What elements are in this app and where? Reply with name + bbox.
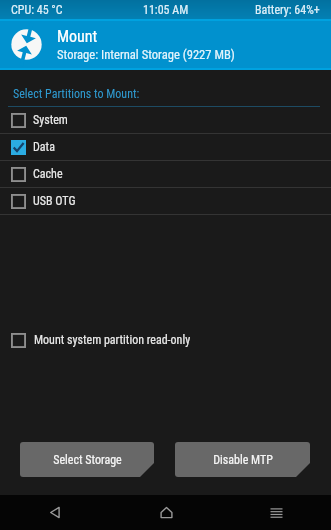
button[interactable]: Data — [0, 134, 331, 161]
button[interactable]: System — [0, 107, 331, 134]
staticText: Cache — [33, 167, 63, 181]
staticText: Disable MTP — [213, 453, 273, 467]
button[interactable]: Home — [111, 495, 221, 530]
button[interactable]: Menu — [221, 495, 331, 530]
button[interactable]: Select Storage — [20, 442, 154, 477]
staticText: System — [33, 113, 68, 127]
staticText: Battery: 64%+ — [255, 3, 320, 17]
staticText: Select Partitions to Mount: — [13, 87, 140, 101]
staticText: Data — [33, 140, 55, 154]
button[interactable]: Back — [0, 495, 111, 530]
staticText: Mount system partition read-only — [34, 333, 191, 347]
staticText: CPU: 45 °C — [11, 3, 63, 17]
staticText: Select Storage — [53, 453, 122, 467]
button[interactable]: Mount system partition read-only — [0, 329, 331, 351]
staticText: Mount — [57, 27, 98, 46]
button[interactable]: Cache — [0, 161, 331, 188]
staticText: Storage: Internal Storage (9227 MB) — [57, 47, 235, 62]
button[interactable]: USB OTG — [0, 188, 331, 215]
staticText: 11:05 AM — [143, 3, 189, 17]
staticText: USB OTG — [33, 194, 76, 208]
button[interactable]: Disable MTP — [175, 442, 310, 477]
